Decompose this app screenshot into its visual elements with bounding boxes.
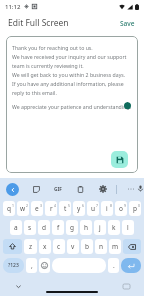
button[interactable]: Settings	[97, 183, 109, 195]
button[interactable]: j	[94, 220, 106, 235]
button[interactable]: w	[17, 201, 29, 216]
staticText: 3	[40, 203, 42, 208]
button[interactable]: q	[3, 201, 15, 216]
button[interactable]: z	[24, 239, 37, 254]
staticText: ?123	[8, 262, 19, 269]
button[interactable]: g	[66, 220, 78, 235]
button[interactable]: n	[95, 239, 107, 254]
staticText: 2	[26, 203, 28, 208]
button[interactable]: r	[45, 201, 57, 216]
staticText: 7	[96, 203, 98, 208]
staticText: We have received your inquiry and our su…	[12, 53, 127, 60]
button[interactable]: u	[87, 201, 99, 216]
button[interactable]: Save	[111, 151, 128, 168]
staticText: t	[64, 204, 67, 213]
staticText: .	[113, 261, 115, 270]
button[interactable]: Emoji	[39, 258, 50, 273]
button[interactable]: Space	[52, 258, 106, 273]
button[interactable]: ,	[26, 258, 37, 273]
staticText: r	[50, 204, 53, 213]
staticText: p	[133, 204, 137, 213]
staticText: reply to this email.	[12, 89, 57, 96]
staticText: k	[112, 223, 116, 232]
staticText: h	[84, 223, 89, 232]
staticText: c	[57, 242, 61, 251]
button[interactable]: Voice input	[137, 183, 144, 195]
staticText: ,	[31, 261, 33, 270]
button[interactable]: Save	[116, 17, 139, 30]
button[interactable]: k	[108, 220, 120, 235]
button[interactable]: o	[115, 201, 127, 216]
button[interactable]: .	[108, 258, 119, 273]
button[interactable]: c	[53, 239, 65, 254]
staticText: s	[28, 223, 32, 232]
staticText: j	[99, 223, 101, 232]
staticText: l	[127, 223, 129, 232]
staticText: 9	[124, 203, 126, 208]
staticText: n	[99, 242, 104, 251]
button[interactable]: Stickers	[30, 183, 42, 195]
staticText: u	[91, 204, 96, 213]
button[interactable]: p	[129, 201, 141, 216]
staticText: GIF	[54, 186, 62, 193]
button[interactable]: ?123	[3, 258, 24, 273]
button[interactable]: GIF	[53, 185, 63, 194]
staticText: g	[70, 223, 74, 232]
staticText: 4	[54, 203, 56, 208]
staticText: e	[35, 204, 39, 213]
staticText: Save	[120, 19, 135, 28]
staticText: We will get back to you within 2 busines…	[12, 71, 126, 78]
button[interactable]: v	[67, 239, 79, 254]
staticText: 6	[82, 203, 84, 208]
button[interactable]: a	[10, 220, 22, 235]
button[interactable]: More options	[125, 183, 137, 195]
staticText: 5	[68, 203, 70, 208]
staticText: We appreciate your patience and understa…	[12, 103, 131, 110]
staticText: Edit Full Screen	[8, 17, 69, 29]
staticText: team is currently reviewing it.	[12, 62, 84, 69]
button[interactable]: Backspace	[123, 239, 141, 254]
button[interactable]: Hide keyboard	[12, 280, 24, 292]
staticText: v	[71, 242, 75, 251]
staticText: o	[119, 204, 123, 213]
button[interactable]: Clipboard	[74, 183, 86, 195]
staticText: z	[29, 242, 33, 251]
button[interactable]: d	[38, 220, 50, 235]
staticText: f	[57, 223, 60, 232]
button[interactable]: x	[39, 239, 51, 254]
staticText: i	[106, 204, 108, 213]
button[interactable]: i	[101, 201, 113, 216]
staticText: 8	[110, 203, 112, 208]
button[interactable]: Back	[6, 183, 19, 196]
button[interactable]: s	[24, 220, 36, 235]
button[interactable]: Thank you for reaching out to us.	[6, 36, 138, 173]
staticText: y	[77, 204, 81, 213]
button[interactable]: l	[122, 220, 134, 235]
staticText: x	[43, 242, 47, 251]
button[interactable]: m	[109, 239, 121, 254]
button[interactable]: f	[52, 220, 64, 235]
staticText: w	[20, 204, 26, 213]
staticText: If you have any additional information, …	[12, 80, 124, 87]
button[interactable]: y	[73, 201, 85, 216]
staticText: a	[14, 223, 18, 232]
button[interactable]: Enter	[121, 258, 141, 273]
staticText: 1	[12, 203, 14, 208]
staticText: m	[112, 242, 119, 251]
staticText: 11:12	[5, 3, 21, 11]
button[interactable]: Shift	[3, 239, 22, 254]
button[interactable]: h	[80, 220, 92, 235]
button[interactable]: e	[31, 201, 43, 216]
button[interactable]: t	[59, 201, 71, 216]
staticText: b	[85, 242, 89, 251]
button[interactable]: b	[81, 239, 93, 254]
button[interactable]: Switch keyboard	[120, 280, 132, 292]
staticText: 0	[138, 203, 140, 208]
staticText: q	[7, 204, 11, 213]
staticText: Thank you for reaching out to us.	[12, 44, 93, 51]
staticText: d	[42, 223, 46, 232]
